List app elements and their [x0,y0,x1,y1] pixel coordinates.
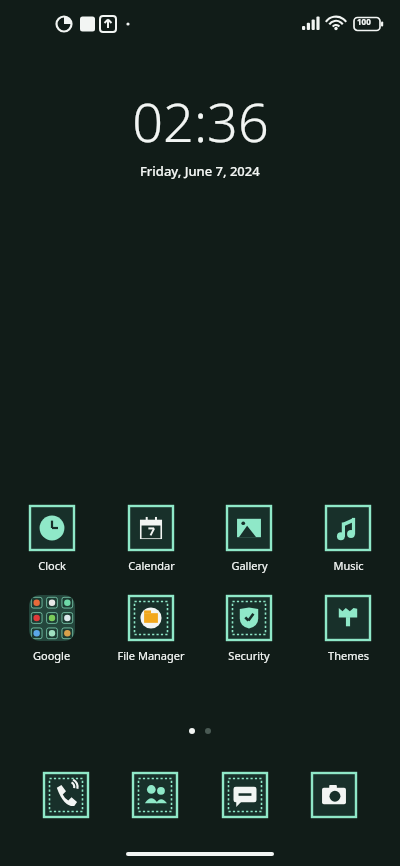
staticText: Google [33,648,71,663]
staticText: Gallery [231,558,268,573]
button[interactable]: Phone [43,772,89,818]
button[interactable]: Music [302,505,394,573]
button[interactable]: Security [203,595,295,663]
staticText: Music [333,558,364,573]
button[interactable]: Gallery [203,505,295,573]
staticText: Security [228,648,270,663]
staticText: Calendar [128,558,175,573]
button[interactable]: Google [6,595,98,663]
button[interactable]: Contacts [132,772,178,818]
staticText: 100 [357,16,371,27]
button[interactable]: Camera [311,772,357,818]
button[interactable]: Calendar [105,505,197,573]
staticText: Friday, June 7, 2024 [140,162,260,180]
staticText: Clock [38,558,66,573]
button[interactable]: Messages [222,772,268,818]
staticText: 02:36 [132,84,269,158]
button[interactable]: File Manager [105,595,197,663]
button[interactable]: Clock [6,505,98,573]
staticText: Themes [328,648,369,663]
staticText: File Manager [117,648,185,663]
button[interactable]: Themes [302,595,394,663]
